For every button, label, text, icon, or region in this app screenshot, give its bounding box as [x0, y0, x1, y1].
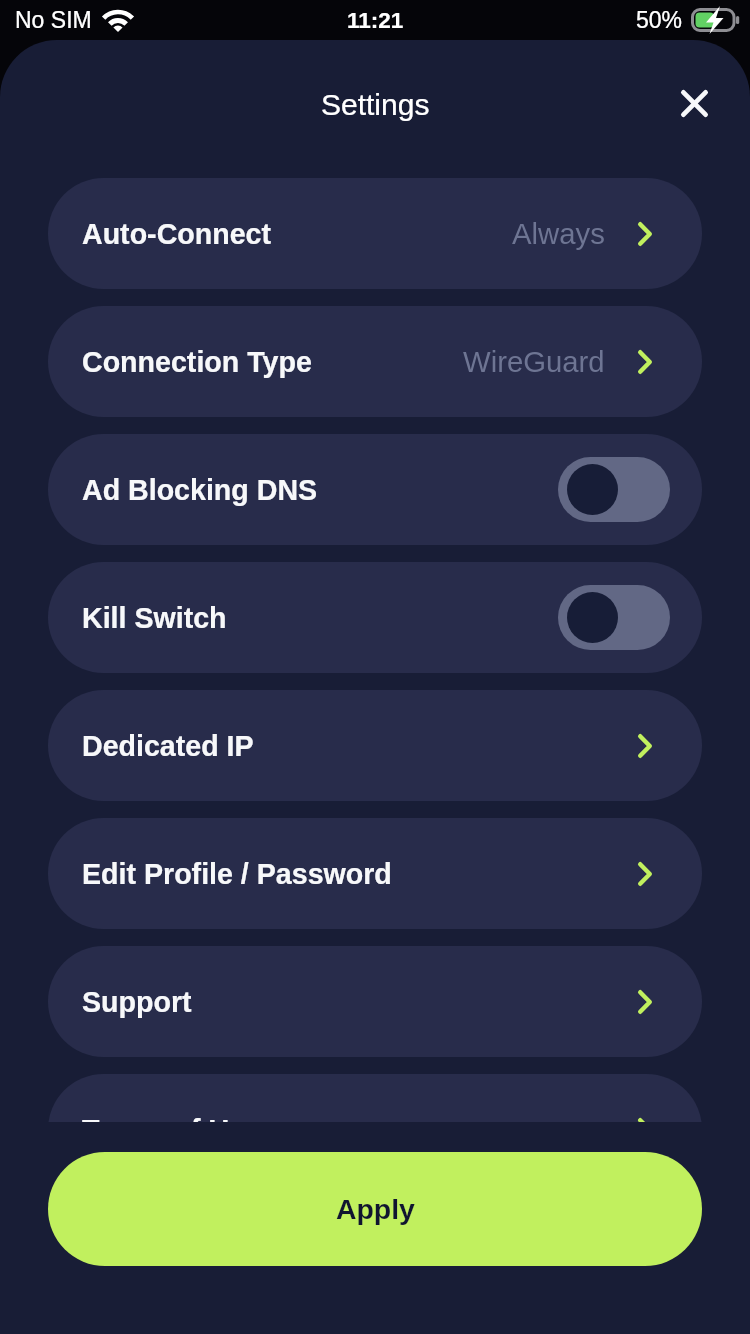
button[interactable]: Kill Switch switch, off [558, 585, 670, 650]
staticText: 11:21 [347, 8, 404, 33]
button[interactable]: Terms of Use [48, 1074, 702, 1122]
staticText: Connection Type [82, 346, 312, 378]
staticText: Kill Switch [82, 602, 227, 634]
staticText: Edit Profile / Password [82, 858, 392, 890]
staticText: Apply [336, 1193, 415, 1225]
staticText: WireGuard [463, 345, 605, 378]
button[interactable]: Ad Blocking DNS [48, 434, 702, 545]
staticText: No SIM [15, 7, 92, 33]
button[interactable]: Close settings [668, 77, 720, 129]
button[interactable]: Kill Switch [48, 562, 702, 673]
staticText: Auto-Connect [82, 218, 272, 250]
staticText: Ad Blocking DNS [82, 474, 318, 506]
button[interactable]: Auto-Connect [48, 178, 702, 289]
button[interactable]: Ad Blocking DNS switch, off [558, 457, 670, 522]
button[interactable]: Support [48, 946, 702, 1057]
staticText: Terms of Use [82, 1114, 262, 1122]
staticText: Support [82, 986, 192, 1018]
staticText: Settings [321, 88, 430, 122]
staticText: Dedicated IP [82, 730, 254, 762]
staticText: Always [512, 217, 605, 250]
button[interactable]: Edit Profile / Password [48, 818, 702, 929]
button[interactable]: Apply [48, 1152, 702, 1266]
button[interactable]: Dedicated IP [48, 690, 702, 801]
staticText: 50% [636, 7, 683, 33]
button[interactable]: Connection Type [48, 306, 702, 417]
